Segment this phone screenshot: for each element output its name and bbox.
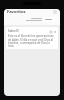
staticText: Salmo IV: [8, 29, 19, 33]
button[interactable]: More options: [52, 9, 57, 14]
button[interactable]: Share: [53, 30, 56, 33]
button[interactable]: Bookmark: [49, 30, 52, 33]
staticText: Este es el libro de las generaciones de …: [8, 34, 56, 47]
button[interactable]: [44, 17, 57, 22]
button[interactable]: Favoritos: [7, 9, 26, 14]
staticText: Favoritos: [7, 9, 26, 14]
button[interactable]: Salmo IV: [6, 27, 58, 49]
